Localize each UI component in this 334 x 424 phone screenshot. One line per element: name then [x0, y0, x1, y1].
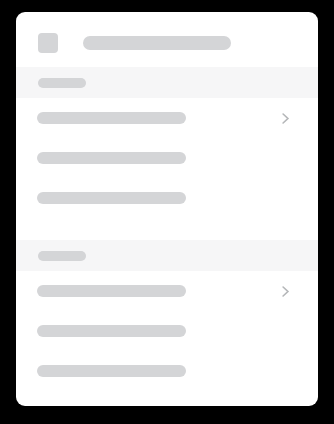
button[interactable]: Open section [16, 98, 318, 138]
button[interactable]: Navigation menu [38, 33, 58, 53]
button[interactable] [16, 178, 318, 218]
button[interactable]: Open section [272, 105, 298, 131]
button[interactable] [16, 311, 318, 351]
button[interactable]: Open section [16, 271, 318, 311]
button[interactable] [16, 351, 318, 391]
button[interactable]: Open section [272, 278, 298, 304]
button[interactable] [16, 138, 318, 178]
